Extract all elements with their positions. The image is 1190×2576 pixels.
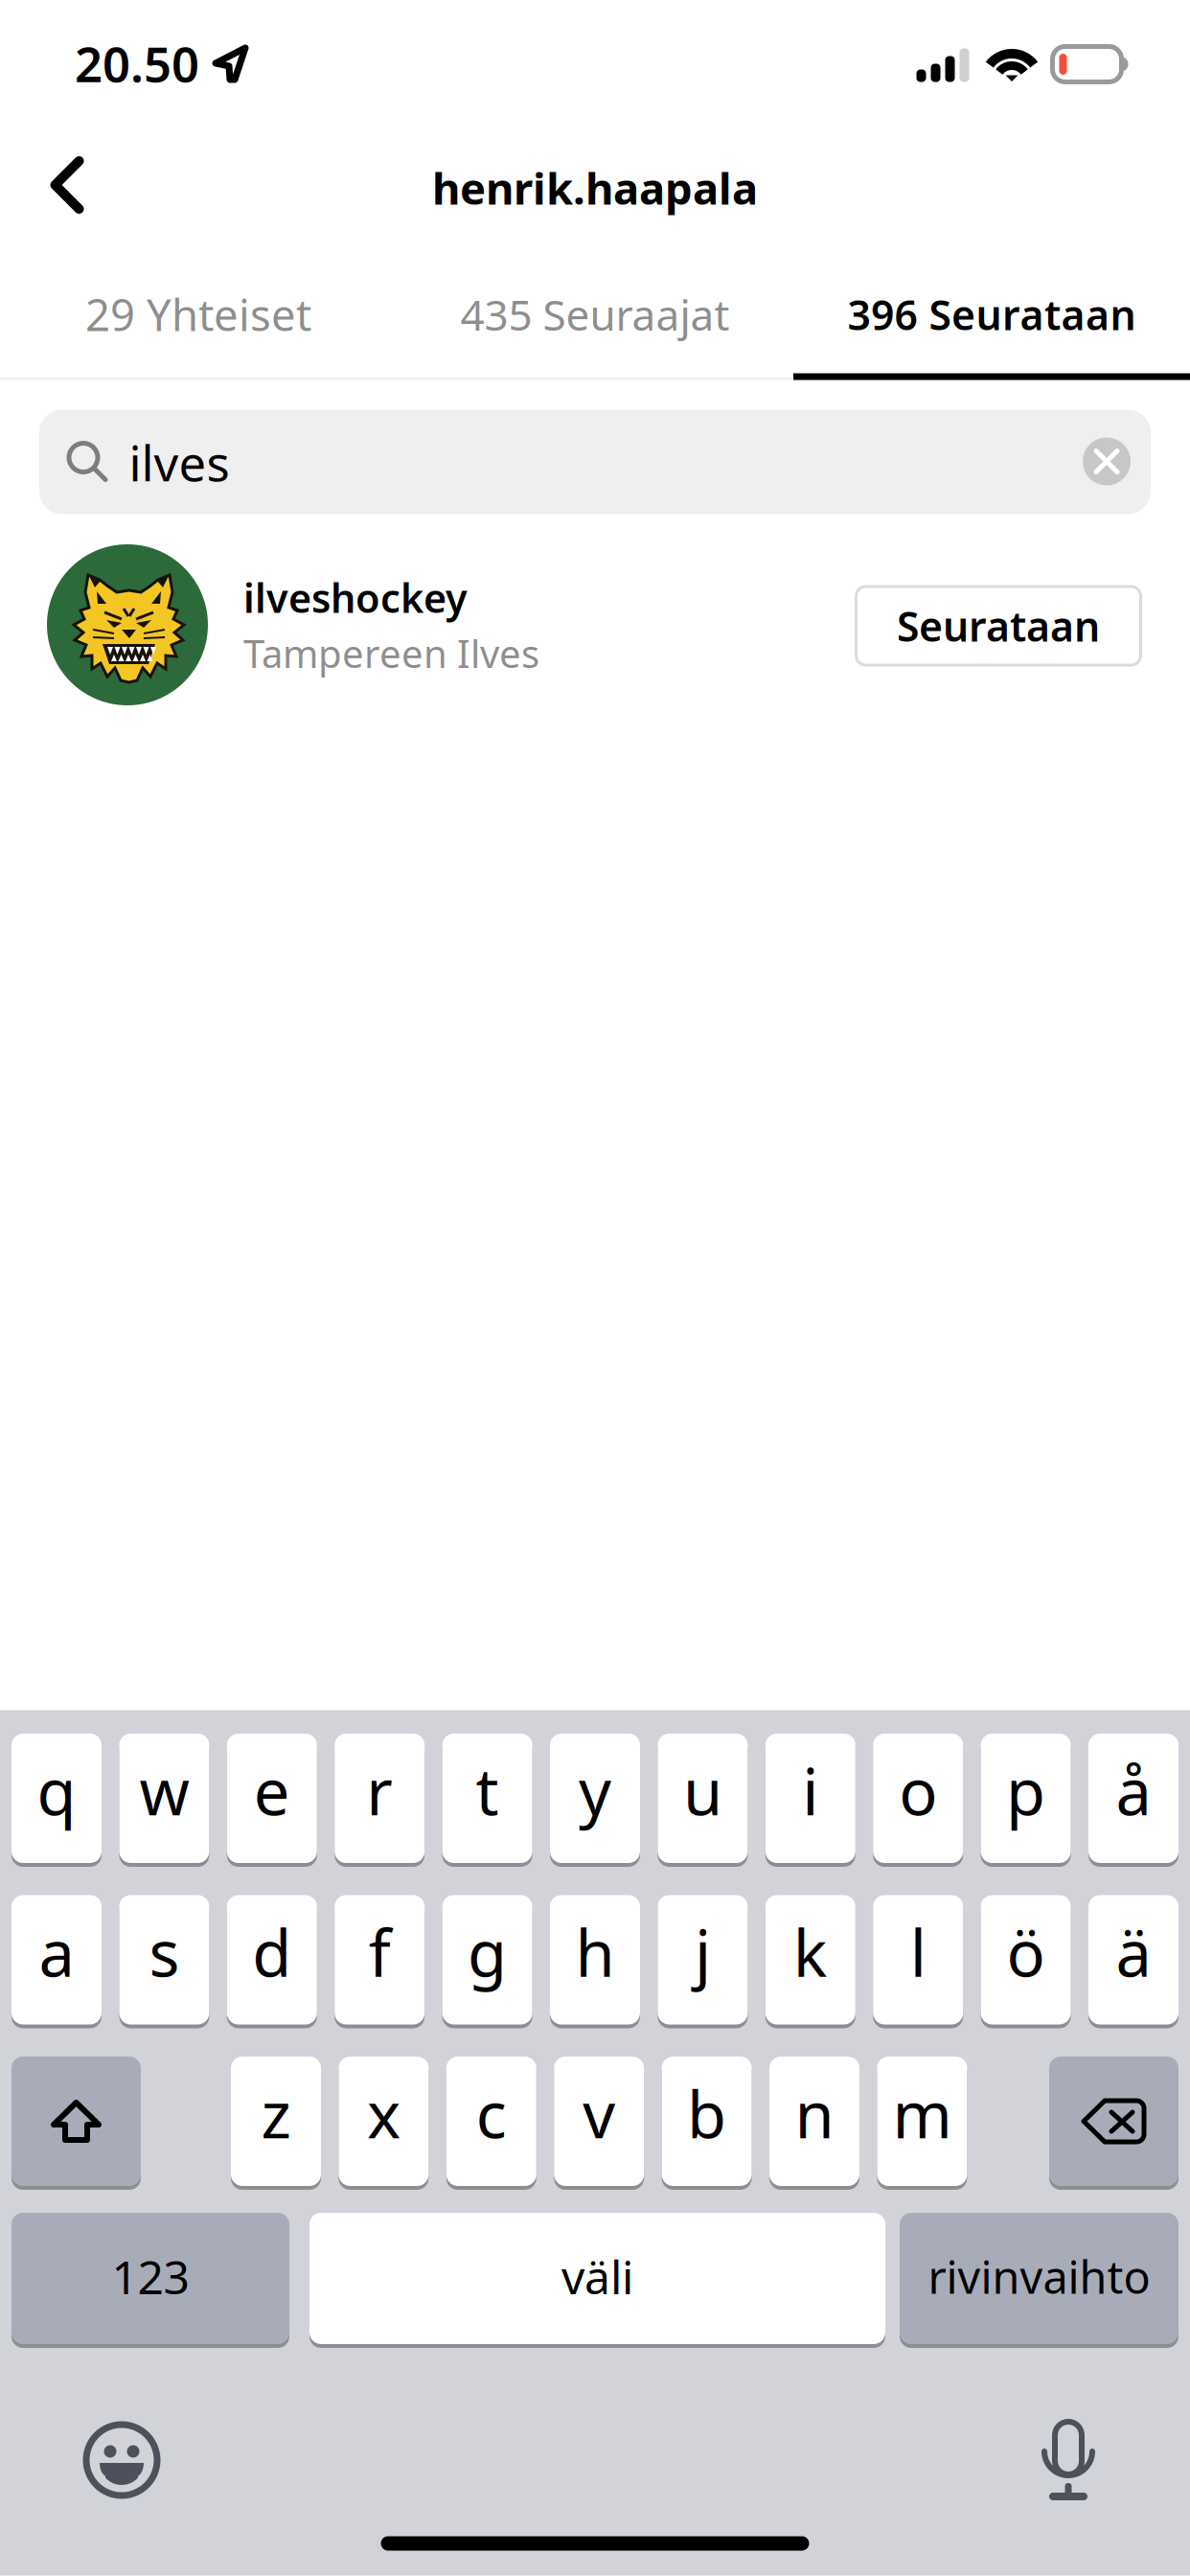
- button[interactable]: z: [231, 2057, 321, 2186]
- button[interactable]: w: [119, 1734, 209, 1863]
- button[interactable]: o: [873, 1734, 963, 1863]
- staticText: j: [695, 1910, 711, 1994]
- button[interactable]: 123: [11, 2213, 289, 2344]
- staticText: k: [793, 1910, 828, 1994]
- staticText: s: [149, 1910, 180, 1994]
- staticText: q: [37, 1748, 76, 1833]
- staticText: 20.50: [75, 31, 199, 96]
- staticText: r: [366, 1748, 393, 1833]
- staticText: ilveshockey: [243, 571, 468, 624]
- staticText: Tampereen Ilves: [243, 628, 539, 678]
- staticText: i: [802, 1748, 819, 1833]
- button[interactable]: 435 Seuraajat: [397, 238, 793, 391]
- button[interactable]: rivinvaihto: [900, 2213, 1179, 2344]
- staticText: å: [1116, 1748, 1151, 1833]
- staticText: Seurataan: [897, 599, 1100, 653]
- staticText: ilves: [129, 430, 229, 495]
- staticText: n: [795, 2071, 834, 2156]
- staticText: väli: [561, 2246, 633, 2307]
- button[interactable]: å: [1088, 1734, 1179, 1863]
- staticText: g: [468, 1910, 507, 1994]
- button[interactable]: x: [339, 2057, 429, 2186]
- button[interactable]: h: [550, 1895, 640, 2024]
- button[interactable]: b: [662, 2057, 752, 2186]
- staticText: w: [139, 1748, 189, 1833]
- staticText: a: [39, 1910, 74, 1994]
- button[interactable]: a: [11, 1895, 102, 2024]
- button[interactable]: Emoji keyboard: [81, 2420, 162, 2500]
- button[interactable]: k: [765, 1895, 855, 2024]
- staticText: x: [367, 2071, 400, 2156]
- button[interactable]: u: [658, 1734, 748, 1863]
- button[interactable]: l: [873, 1895, 963, 2024]
- button[interactable]: Delete: [1049, 2057, 1179, 2186]
- staticText: z: [261, 2071, 291, 2156]
- button[interactable]: v: [554, 2057, 644, 2186]
- staticText: ö: [1007, 1910, 1045, 1994]
- staticText: 396 Seurataan: [847, 287, 1136, 342]
- button[interactable]: s: [119, 1895, 209, 2024]
- staticText: 123: [112, 2246, 189, 2307]
- staticText: o: [899, 1748, 937, 1833]
- button[interactable]: j: [658, 1895, 748, 2024]
- button[interactable]: ö: [981, 1895, 1071, 2024]
- button[interactable]: g: [442, 1895, 532, 2024]
- staticText: t: [476, 1748, 499, 1833]
- staticText: rivinvaihto: [928, 2247, 1150, 2306]
- staticText: b: [687, 2071, 726, 2156]
- button[interactable]: n: [769, 2057, 859, 2186]
- button[interactable]: i: [765, 1734, 855, 1863]
- staticText: ä: [1116, 1910, 1151, 1994]
- staticText: d: [252, 1910, 292, 1994]
- staticText: f: [369, 1910, 391, 1994]
- button[interactable]: Dictation: [1041, 2411, 1095, 2490]
- staticText: m: [892, 2071, 952, 2156]
- button[interactable]: ilves: [39, 410, 1151, 514]
- staticText: 435 Seuraajat: [460, 286, 730, 342]
- staticText: l: [910, 1910, 926, 1994]
- button[interactable]: 396 Seurataan: [793, 238, 1190, 391]
- button[interactable]: f: [335, 1895, 425, 2024]
- button[interactable]: Back: [7, 122, 127, 248]
- button[interactable]: ä: [1088, 1895, 1179, 2024]
- staticText: c: [476, 2071, 507, 2156]
- button[interactable]: m: [877, 2057, 967, 2186]
- staticText: henrik.haapala: [432, 159, 758, 217]
- button[interactable]: d: [227, 1895, 317, 2024]
- button[interactable]: r: [335, 1734, 425, 1863]
- button[interactable]: väli: [309, 2213, 885, 2344]
- button[interactable]: Shift: [11, 2057, 141, 2186]
- staticText: h: [575, 1910, 615, 1994]
- button[interactable]: c: [446, 2057, 536, 2186]
- button[interactable]: ilveshockey: [47, 544, 813, 705]
- staticText: 29 Yhteiset: [85, 285, 311, 343]
- button[interactable]: q: [11, 1734, 102, 1863]
- button[interactable]: 29 Yhteiset: [0, 238, 397, 391]
- button[interactable]: t: [442, 1734, 532, 1863]
- button[interactable]: y: [550, 1734, 640, 1863]
- staticText: p: [1006, 1748, 1045, 1833]
- button[interactable]: p: [981, 1734, 1071, 1863]
- staticText: e: [254, 1748, 290, 1833]
- staticText: u: [683, 1748, 722, 1833]
- staticText: v: [583, 2071, 615, 2156]
- button[interactable]: Seurataan: [856, 586, 1141, 665]
- staticText: y: [579, 1748, 611, 1833]
- button[interactable]: e: [227, 1734, 317, 1863]
